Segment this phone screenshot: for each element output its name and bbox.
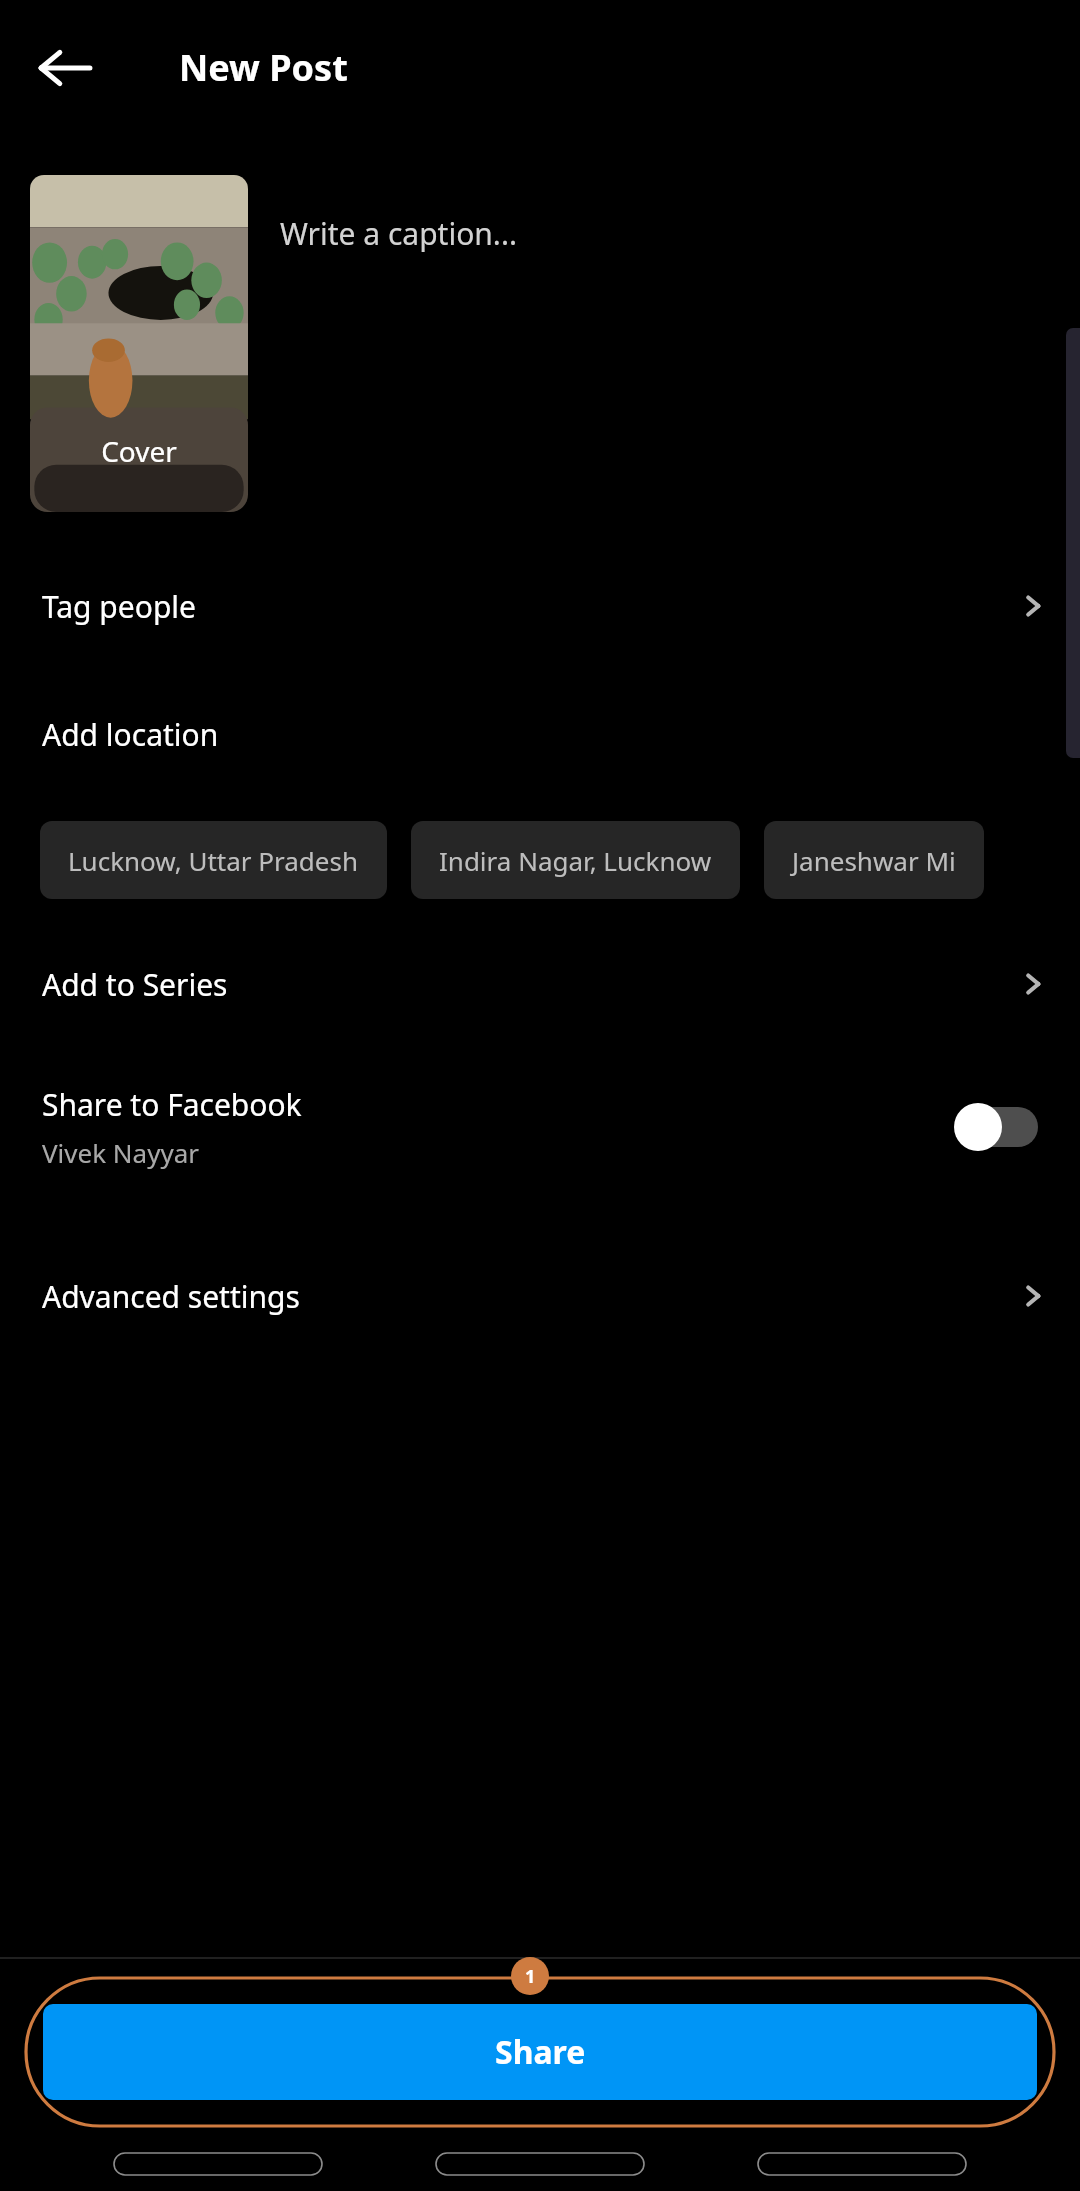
button[interactable]: Share to Facebook bbox=[0, 1062, 1080, 1192]
button[interactable]: Advanced settings bbox=[0, 1246, 1080, 1346]
staticText: New Post bbox=[179, 43, 348, 92]
button[interactable]: Share to Facebook toggle bbox=[954, 1103, 1038, 1151]
staticText: Vivek Nayyar bbox=[42, 1135, 200, 1170]
staticText: Tag people bbox=[42, 586, 196, 627]
staticText: Add location bbox=[42, 714, 219, 755]
button[interactable]: Lucknow, Uttar Pradesh bbox=[40, 821, 387, 899]
button[interactable]: Add to Series bbox=[0, 934, 1080, 1034]
staticText: 1 bbox=[525, 1964, 536, 1989]
button[interactable]: Janeshwar Mi bbox=[764, 821, 984, 899]
staticText: Janeshwar Mi bbox=[792, 843, 956, 878]
button[interactable]: Write a caption... bbox=[248, 175, 1080, 335]
staticText: Share to Facebook bbox=[42, 1084, 302, 1125]
button[interactable]: Tag people bbox=[0, 556, 1080, 656]
staticText: Indira Nagar, Lucknow bbox=[439, 843, 712, 878]
staticText: Advanced settings bbox=[42, 1276, 300, 1317]
button[interactable]: Cover thumbnail bbox=[30, 175, 248, 512]
staticText: Lucknow, Uttar Pradesh bbox=[68, 843, 359, 878]
staticText: Share bbox=[495, 2030, 586, 2074]
staticText: Add to Series bbox=[42, 964, 228, 1005]
staticText: Cover bbox=[101, 432, 177, 470]
staticText: Write a caption... bbox=[280, 213, 517, 254]
button[interactable]: Back bbox=[26, 29, 104, 107]
button[interactable]: Share bbox=[43, 2004, 1037, 2100]
button[interactable]: Add location bbox=[0, 684, 1080, 784]
button[interactable]: Indira Nagar, Lucknow bbox=[411, 821, 740, 899]
